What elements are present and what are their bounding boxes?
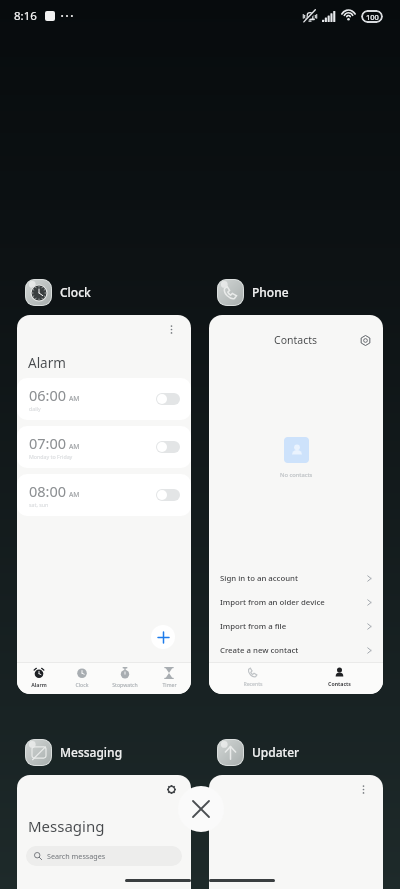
- button[interactable]: Account settings: [17, 775, 191, 889]
- staticText: 100: [366, 12, 379, 22]
- staticText: AM: [69, 442, 80, 451]
- staticText: Clock: [60, 284, 91, 300]
- staticText: Contacts: [274, 333, 318, 347]
- button[interactable]: Clock: [24, 278, 91, 306]
- staticText: Messaging: [28, 816, 105, 836]
- button[interactable]: Settings: [357, 332, 373, 348]
- button[interactable]: Create a new contact: [209, 638, 383, 662]
- button[interactable]: Timer: [147, 667, 191, 688]
- staticText: Updater: [252, 744, 300, 760]
- staticText: 08:00: [29, 481, 67, 501]
- button[interactable]: Alarm: [17, 667, 60, 688]
- staticText: 8:16: [14, 8, 37, 24]
- button[interactable]: More options: [163, 321, 179, 337]
- button[interactable]: More options: [209, 775, 383, 889]
- staticText: Timer: [162, 681, 177, 688]
- button[interactable]: Account settings: [164, 782, 178, 796]
- staticText: Import from an older device: [220, 597, 325, 608]
- staticText: 06:00: [29, 385, 67, 405]
- button[interactable]: More options: [17, 315, 191, 694]
- staticText: Clock: [75, 681, 89, 688]
- staticText: Phone: [252, 284, 289, 300]
- button[interactable]: Sign in to an account: [209, 566, 383, 590]
- button[interactable]: Import from an older device: [209, 590, 383, 614]
- staticText: Search messages: [47, 851, 106, 861]
- button[interactable]: Search messages: [26, 846, 182, 866]
- button[interactable]: Contacts: [296, 667, 383, 687]
- button[interactable]: 06:00: [17, 378, 191, 420]
- button[interactable]: Phone: [216, 278, 289, 306]
- button[interactable]: More options: [355, 781, 371, 797]
- button[interactable]: Stopwatch: [103, 667, 147, 688]
- staticText: 07:00: [29, 433, 67, 453]
- staticText: Create a new contact: [220, 645, 299, 656]
- staticText: Stopwatch: [112, 681, 138, 688]
- button[interactable]: Toggle alarm: [156, 441, 180, 453]
- staticText: AM: [69, 394, 80, 403]
- button[interactable]: 08:00: [17, 474, 191, 516]
- button[interactable]: Updater: [216, 738, 300, 766]
- button[interactable]: Import from a file: [209, 614, 383, 638]
- staticText: sat, sun: [29, 501, 49, 508]
- button[interactable]: Close all: [178, 786, 224, 832]
- button[interactable]: Toggle alarm: [156, 393, 180, 405]
- staticText: Recents: [243, 680, 263, 687]
- button[interactable]: Clock: [60, 667, 103, 688]
- button[interactable]: Messaging: [24, 738, 123, 766]
- button[interactable]: 07:00: [17, 426, 191, 468]
- button[interactable]: Contacts: [209, 315, 383, 694]
- button[interactable]: Add alarm: [151, 625, 175, 649]
- staticText: Contacts: [328, 680, 351, 687]
- staticText: Sign in to an account: [220, 573, 298, 584]
- staticText: Alarm: [28, 354, 66, 372]
- button[interactable]: Toggle alarm: [156, 489, 180, 501]
- staticText: Alarm: [31, 681, 47, 688]
- staticText: AM: [69, 490, 80, 499]
- staticText: Monday to Friday: [29, 453, 73, 460]
- button[interactable]: Recents: [209, 667, 296, 687]
- staticText: daily: [29, 405, 41, 412]
- staticText: Import from a file: [220, 621, 287, 632]
- staticText: Messaging: [60, 744, 123, 760]
- staticText: No contacts: [280, 471, 313, 479]
